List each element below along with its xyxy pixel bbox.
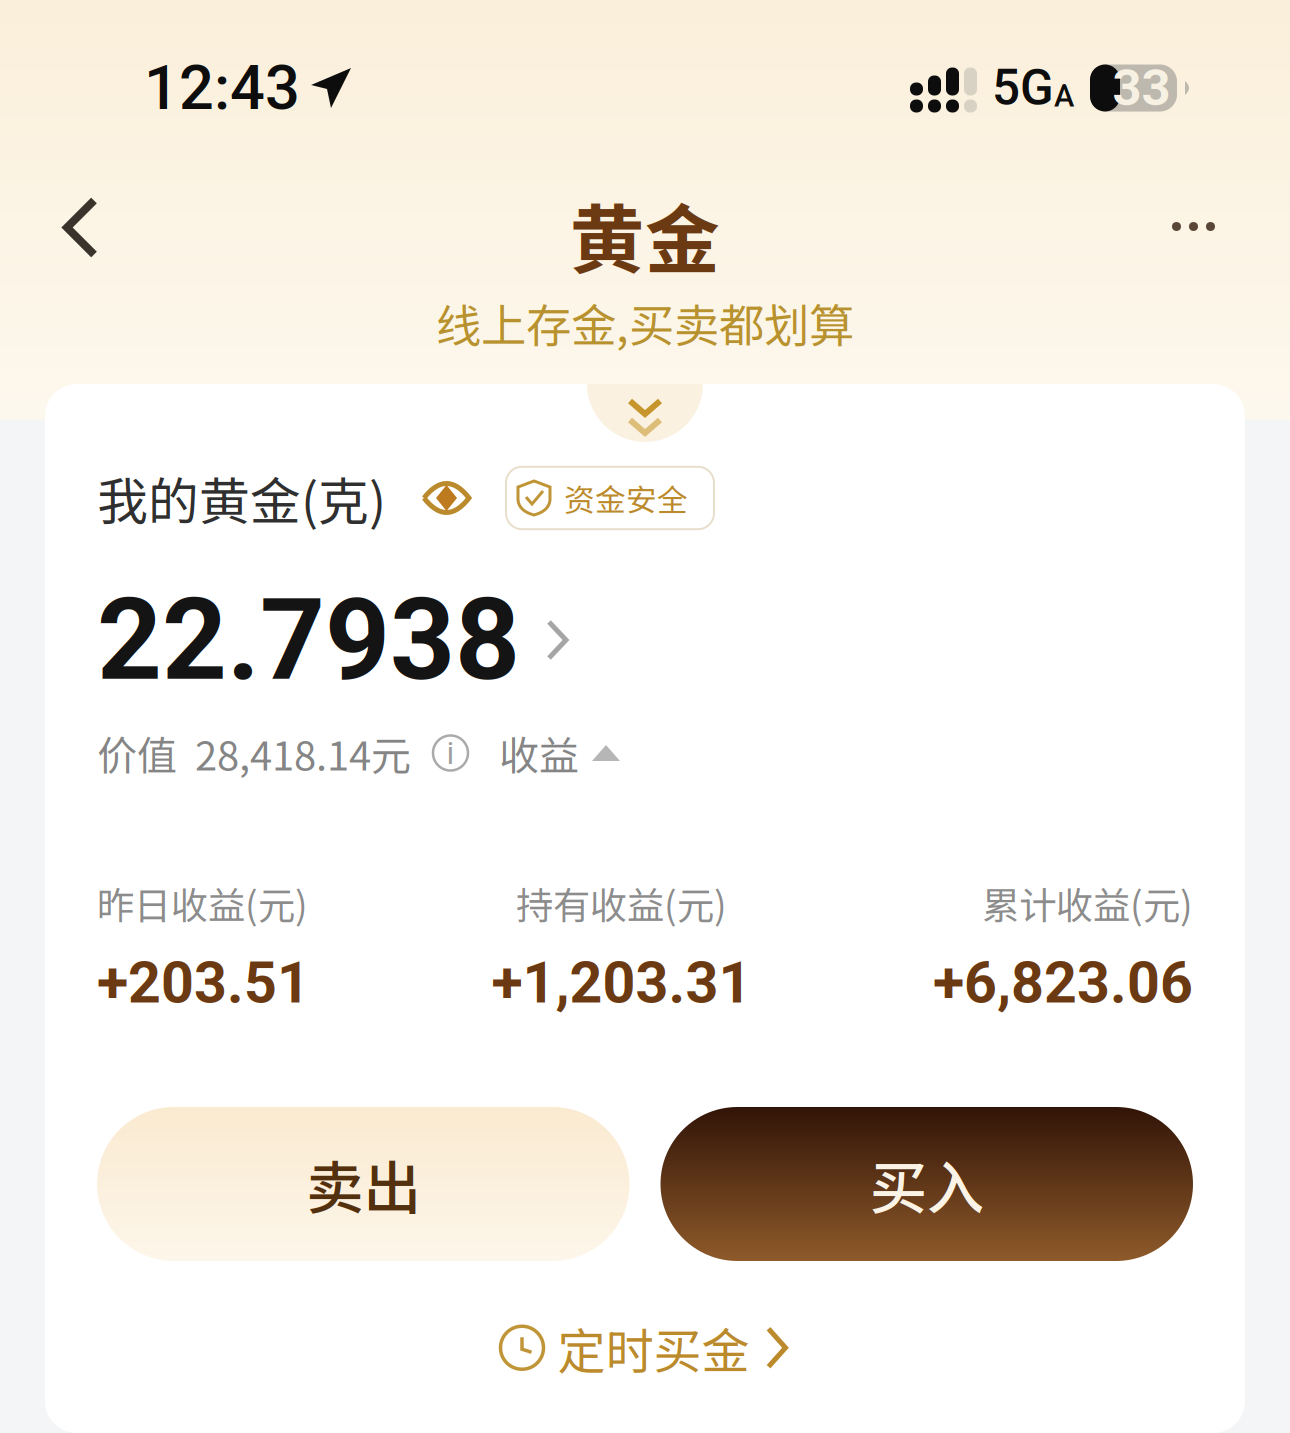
staticText: 黄金 (570, 180, 720, 288)
staticText: 线上存金,买卖都划算 (436, 290, 854, 355)
staticText: +1,203.31 (491, 949, 751, 1017)
staticText: 收益 (499, 724, 579, 782)
button[interactable]: More (1137, 176, 1250, 269)
button[interactable]: 卖出 (97, 1107, 629, 1261)
staticText: A (1054, 78, 1074, 114)
staticText: 持有收益(元) (516, 876, 727, 930)
staticText: i (446, 734, 454, 772)
staticText: 卖出 (306, 1142, 420, 1225)
staticText: +6,823.06 (933, 949, 1193, 1017)
staticText: 昨日收益(元) (97, 876, 308, 930)
staticText: 33 (1112, 58, 1170, 118)
button[interactable]: Back (40, 169, 129, 275)
staticText: 22.7938 (97, 574, 520, 706)
staticText: 定时买金 (557, 1313, 749, 1382)
staticText: 5G (992, 59, 1054, 117)
staticText: 我的黄金(克) (97, 461, 386, 535)
staticText: 资金安全 (564, 476, 688, 520)
button[interactable]: 买入 (660, 1107, 1193, 1261)
staticText: 累计收益(元) (982, 876, 1193, 930)
staticText: 买入 (870, 1142, 984, 1225)
staticText: 12:43 (144, 52, 300, 124)
staticText: +203.51 (97, 949, 310, 1017)
button[interactable]: 定时买金 (500, 1313, 789, 1382)
staticText: 价值 28,418.14元 (97, 724, 411, 782)
